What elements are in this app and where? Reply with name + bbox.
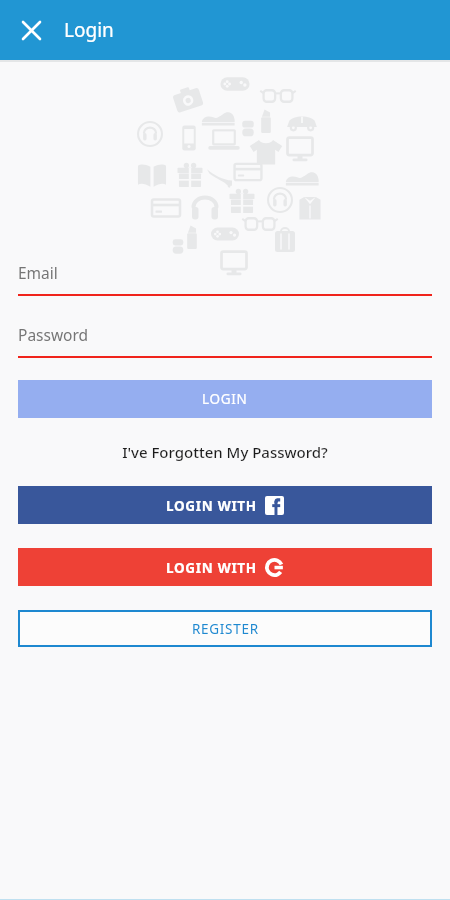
staticText: Password [18, 324, 89, 345]
staticText: Login [64, 17, 114, 43]
staticText: LOGIN [202, 390, 248, 408]
staticText: REGISTER [192, 620, 259, 638]
button[interactable]: REGISTER [18, 610, 432, 647]
button[interactable]: Email [18, 250, 432, 294]
button[interactable]: LOGIN WITH [18, 548, 432, 586]
button[interactable]: Password [18, 312, 432, 356]
button[interactable]: Close [18, 17, 44, 43]
staticText: I've Forgotten My Password? [122, 442, 328, 462]
button[interactable]: I've Forgotten My Password? [18, 442, 432, 462]
button[interactable]: LOGIN [18, 380, 432, 418]
staticText: Email [18, 262, 58, 283]
button[interactable]: LOGIN WITH [18, 486, 432, 524]
staticText: LOGIN WITH [166, 559, 257, 577]
staticText: LOGIN WITH [166, 497, 257, 515]
